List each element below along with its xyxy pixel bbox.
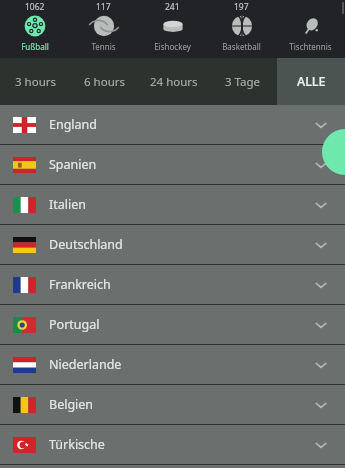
button[interactable]: Tischtennis bbox=[276, 0, 345, 58]
staticText: ALLE bbox=[297, 73, 326, 90]
staticText: Türkische bbox=[49, 436, 105, 453]
staticText: Tischtennis bbox=[289, 41, 332, 52]
staticText: Basketball bbox=[222, 41, 261, 52]
button[interactable]: 117 bbox=[69, 0, 138, 58]
staticText: Spanien bbox=[49, 156, 97, 173]
button[interactable]: Deutschland bbox=[0, 225, 345, 265]
button[interactable]: Niederlande bbox=[0, 345, 345, 385]
staticText: 1062 bbox=[25, 1, 45, 13]
button[interactable]: Türkische bbox=[0, 425, 345, 465]
button[interactable]: Italien bbox=[0, 185, 345, 225]
button[interactable]: Add bbox=[322, 129, 345, 175]
staticText: Frankreich bbox=[49, 276, 111, 293]
staticText: 24 hours bbox=[150, 74, 198, 90]
button[interactable]: ALLE bbox=[277, 58, 345, 105]
staticText: 241 bbox=[165, 1, 180, 13]
button[interactable]: 24 hours bbox=[139, 58, 208, 105]
button[interactable]: 1062 bbox=[0, 0, 69, 58]
staticText: England bbox=[49, 116, 98, 133]
staticText: 6 hours bbox=[84, 74, 125, 90]
staticText: Fußball bbox=[21, 41, 49, 52]
staticText: 3 hours bbox=[15, 74, 56, 90]
staticText: Deutschland bbox=[49, 236, 123, 253]
button[interactable]: Belgien bbox=[0, 385, 345, 425]
staticText: 3 Tage bbox=[225, 74, 261, 90]
button[interactable]: 241 bbox=[138, 0, 207, 58]
button[interactable]: Portugal bbox=[0, 305, 345, 345]
staticText: 197 bbox=[234, 1, 249, 13]
button[interactable]: Frankreich bbox=[0, 265, 345, 305]
button[interactable]: 6 hours bbox=[70, 58, 139, 105]
staticText: Eishockey bbox=[154, 41, 191, 52]
button[interactable]: England bbox=[0, 105, 345, 145]
staticText: Niederlande bbox=[49, 356, 122, 373]
button[interactable]: 197 bbox=[207, 0, 276, 58]
staticText: Tennis bbox=[91, 41, 116, 52]
button[interactable]: 3 hours bbox=[0, 58, 70, 105]
staticText: Portugal bbox=[49, 316, 100, 333]
button[interactable]: Spanien bbox=[0, 145, 345, 185]
staticText: Italien bbox=[49, 196, 86, 213]
staticText: Belgien bbox=[49, 396, 94, 413]
button[interactable]: 3 Tage bbox=[208, 58, 277, 105]
staticText: 117 bbox=[96, 1, 111, 13]
